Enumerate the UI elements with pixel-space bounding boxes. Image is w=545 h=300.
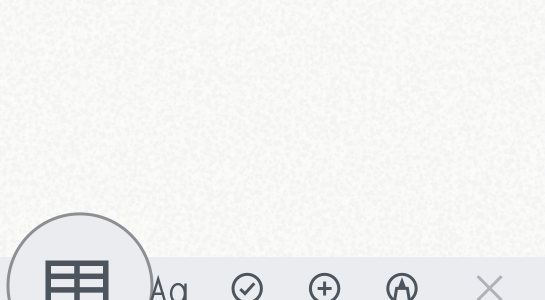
button[interactable]: Add attachment	[308, 271, 342, 300]
button[interactable]: Table	[45, 260, 108, 300]
button[interactable]: Close	[477, 275, 503, 300]
button[interactable]: Markup	[385, 271, 419, 300]
button[interactable]: Text format	[151, 278, 187, 300]
button[interactable]: Checklist	[230, 271, 264, 300]
